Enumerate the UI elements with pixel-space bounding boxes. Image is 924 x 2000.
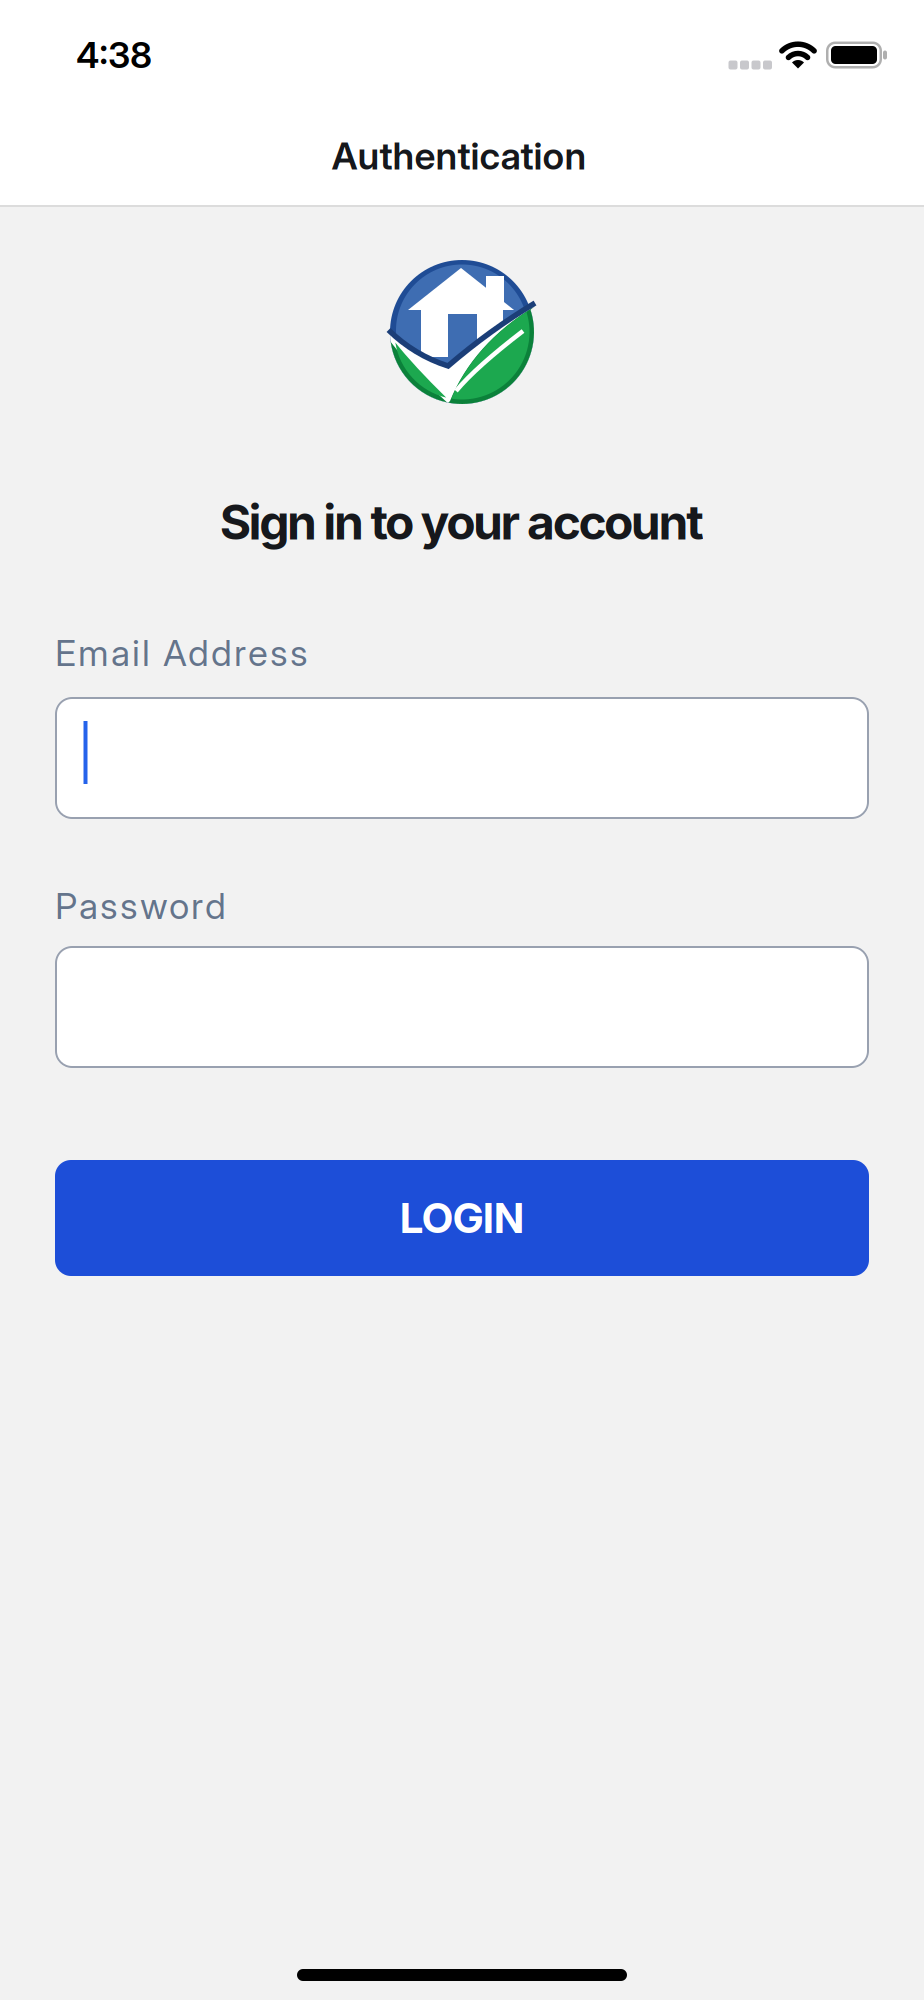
button[interactable]: Password [55,946,869,1068]
staticText: Authentication [331,134,586,178]
staticText: Sign in to your account [220,494,704,550]
staticText: Password [55,885,226,927]
button[interactable]: LOGIN [55,1160,869,1276]
staticText: 4:38 [76,34,152,76]
staticText: LOGIN [400,1194,524,1242]
button[interactable]: Email Address [55,697,869,819]
staticText: Email Address [55,632,308,674]
